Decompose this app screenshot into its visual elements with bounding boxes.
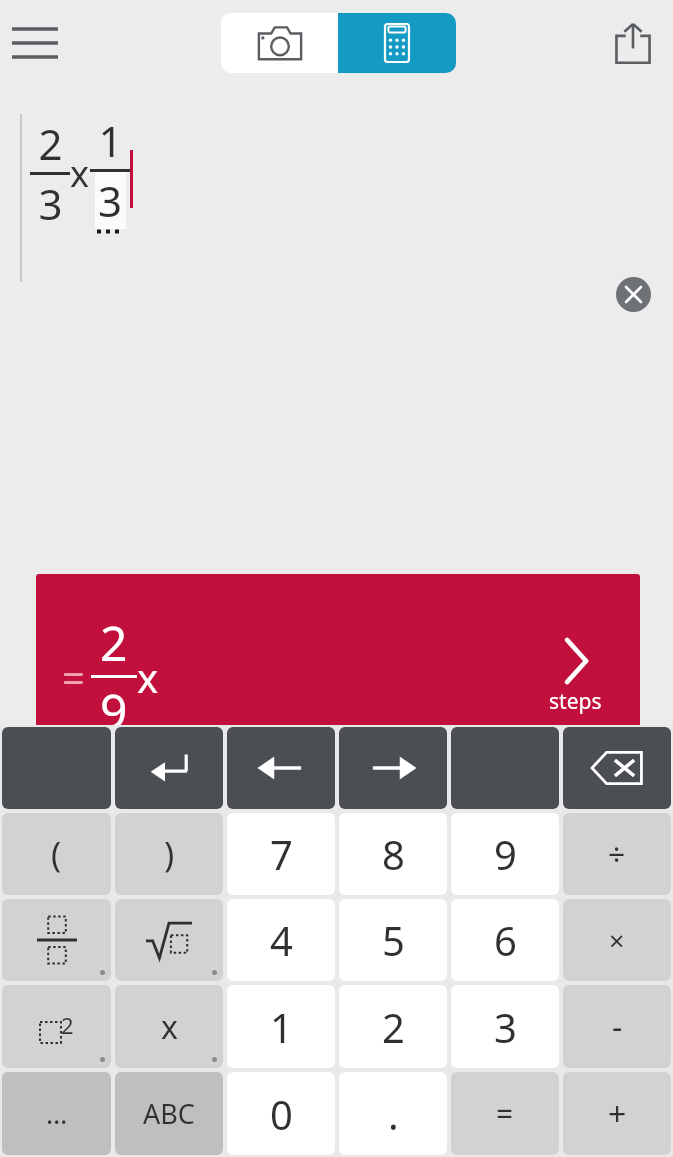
button[interactable]: enter — [115, 727, 223, 809]
staticText: 4 — [270, 913, 293, 967]
button[interactable]: 5 — [339, 899, 447, 981]
button[interactable]: right — [339, 727, 447, 809]
staticText: ÷ — [608, 834, 626, 875]
staticText: 2 — [382, 1000, 405, 1054]
staticText: x — [137, 650, 159, 704]
button[interactable]: ) — [115, 813, 223, 895]
button[interactable]: 2 — [339, 985, 447, 1068]
staticText: 2 — [100, 610, 128, 675]
staticText: 3 — [38, 175, 63, 232]
button[interactable]: Menu — [4, 12, 66, 74]
button[interactable]: 3 — [451, 985, 559, 1068]
button[interactable]: key — [2, 985, 111, 1068]
button[interactable]: del — [563, 727, 671, 809]
button[interactable]: Clear — [616, 277, 651, 312]
button[interactable]: Camera — [221, 13, 338, 73]
staticText: 7 — [270, 827, 293, 881]
staticText: 8 — [382, 827, 405, 881]
button[interactable]: x — [115, 985, 223, 1068]
button[interactable]: ( — [2, 813, 111, 895]
button[interactable]: ÷ — [563, 813, 671, 895]
staticText: 1 — [270, 1000, 293, 1054]
staticText: ) — [164, 831, 175, 877]
staticText: + — [608, 1092, 627, 1136]
staticText: 2 — [61, 1010, 74, 1040]
staticText: ABC — [143, 1095, 195, 1132]
button[interactable]: - — [563, 985, 671, 1068]
button[interactable]: Share — [603, 13, 663, 73]
button[interactable]: + — [563, 1072, 671, 1155]
button[interactable]: = — [36, 574, 640, 779]
button[interactable]: = — [451, 1072, 559, 1155]
staticText: 5 — [382, 913, 405, 967]
button[interactable]: . — [339, 1072, 447, 1155]
staticText: ( — [51, 831, 62, 877]
staticText: steps — [549, 687, 602, 716]
button[interactable]: blank — [451, 727, 559, 809]
staticText: = — [62, 650, 85, 704]
staticText: 2 — [38, 115, 63, 172]
staticText: … — [46, 1095, 68, 1132]
button[interactable]: 1 — [227, 985, 335, 1068]
button[interactable]: 6 — [451, 899, 559, 981]
button[interactable]: 0 — [227, 1072, 335, 1155]
staticText: . — [388, 1087, 399, 1141]
staticText: 3 — [494, 1000, 517, 1054]
button[interactable]: … — [2, 1072, 111, 1155]
staticText: x — [161, 1005, 178, 1049]
staticText: 3 — [98, 172, 123, 229]
staticText: 9 — [100, 678, 128, 743]
button[interactable]: key — [2, 899, 111, 981]
button[interactable]: Calculator — [338, 13, 456, 73]
button[interactable]: key — [115, 899, 223, 981]
button[interactable]: blank — [2, 727, 111, 809]
staticText: 0 — [270, 1087, 293, 1141]
staticText: - — [612, 1005, 623, 1049]
staticText: × — [609, 922, 625, 959]
button[interactable]: 8 — [339, 813, 447, 895]
button[interactable]: × — [563, 899, 671, 981]
button[interactable]: 7 — [227, 813, 335, 895]
button[interactable]: 9 — [451, 813, 559, 895]
staticText: x — [70, 149, 90, 198]
button[interactable]: 4 — [227, 899, 335, 981]
staticText: 9 — [494, 827, 517, 881]
staticText: 6 — [494, 913, 517, 967]
staticText: = — [496, 1093, 514, 1134]
button[interactable]: ABC — [115, 1072, 223, 1155]
staticText: 1 — [98, 112, 123, 169]
button[interactable]: left — [227, 727, 335, 809]
